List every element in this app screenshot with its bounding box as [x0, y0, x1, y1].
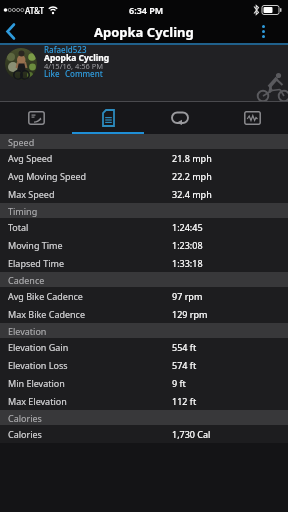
staticText: Avg Moving Speed [8, 170, 87, 182]
staticText: 1:33:18 [172, 257, 203, 269]
staticText: 97 rpm [172, 290, 203, 302]
staticText: Calories [8, 428, 42, 440]
button[interactable] [144, 102, 216, 134]
staticText: Elapsed Time [8, 257, 64, 269]
staticText: 1,730 Cal [172, 428, 211, 440]
staticText: Elevation Loss [8, 359, 68, 371]
button[interactable] [0, 102, 72, 134]
button[interactable] [72, 102, 144, 134]
button[interactable]: Comment [65, 69, 103, 78]
staticText: 574 ft [172, 359, 197, 371]
staticText: Calories [8, 412, 42, 424]
staticText: 4/15/16, 4:56 PM [44, 61, 104, 71]
button[interactable]: Like [44, 69, 60, 78]
staticText: 554 ft [172, 341, 197, 353]
staticText: Speed [8, 136, 35, 148]
staticText: 129 rpm [172, 308, 208, 320]
staticText: 112 ft [172, 395, 197, 407]
staticText: 32.4 mph [172, 188, 212, 200]
staticText: Timing [8, 205, 38, 217]
staticText: AT&T [25, 5, 44, 16]
button[interactable] [258, 20, 288, 43]
staticText: Avg Bike Cadence [8, 290, 83, 302]
staticText: Cadence [8, 274, 45, 286]
button[interactable] [0, 20, 24, 43]
staticText: Min Elevation [8, 377, 65, 389]
button[interactable] [216, 102, 288, 134]
staticText: Total [8, 221, 29, 233]
staticText: Elevation [8, 325, 47, 337]
staticText: 9 ft [172, 377, 186, 389]
staticText: Elevation Gain [8, 341, 69, 353]
staticText: 22.2 mph [172, 170, 212, 182]
staticText: Max Elevation [8, 395, 67, 407]
staticText: Rafaeld523 [44, 44, 87, 55]
staticText: Max Speed [8, 188, 55, 200]
staticText: Max Bike Cadence [8, 308, 86, 320]
button[interactable] [5, 48, 37, 80]
staticText: 1:23:08 [172, 239, 203, 251]
staticText: Avg Speed [8, 152, 53, 164]
staticText: Apopka Cycling [94, 23, 194, 41]
staticText: 1:24:45 [172, 221, 203, 233]
staticText: Apopka Cycling [44, 52, 110, 64]
staticText: 6:34 PM [129, 4, 164, 16]
staticText: Moving Time [8, 239, 63, 251]
staticText: 21.8 mph [172, 152, 212, 164]
